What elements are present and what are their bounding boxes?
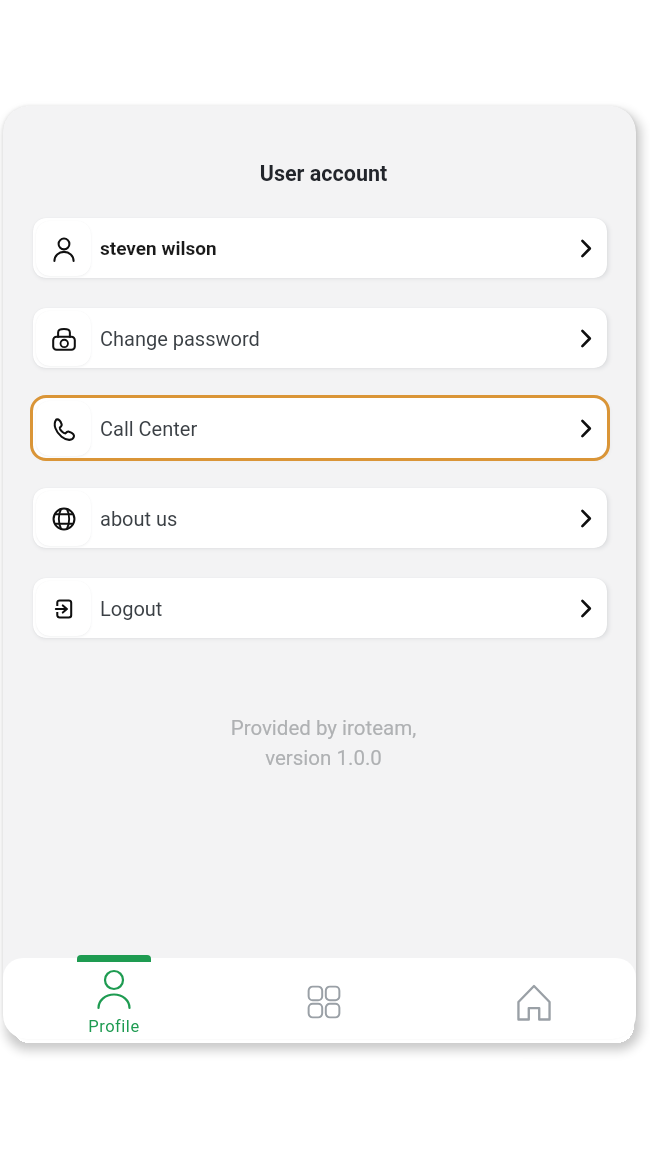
button[interactable]: steven wilson	[33, 218, 607, 278]
staticText: about us	[100, 507, 178, 530]
staticText: Profile	[64, 1017, 164, 1036]
button[interactable]: Logout	[33, 578, 607, 638]
staticText: Call Center	[100, 417, 198, 440]
button[interactable]: Apps	[274, 958, 374, 1039]
button[interactable]: Call Center	[33, 398, 607, 458]
staticText: Logout	[100, 597, 163, 620]
button[interactable]: Change password	[33, 308, 607, 368]
button[interactable]: Profile	[64, 958, 164, 1039]
staticText: Provided by iroteam, version 1.0.0	[7, 716, 640, 770]
button[interactable]: about us	[33, 488, 607, 548]
staticText: User account	[7, 161, 640, 186]
staticText: Change password	[100, 327, 260, 350]
button[interactable]: Home	[484, 958, 584, 1039]
staticText: steven wilson	[100, 237, 217, 259]
